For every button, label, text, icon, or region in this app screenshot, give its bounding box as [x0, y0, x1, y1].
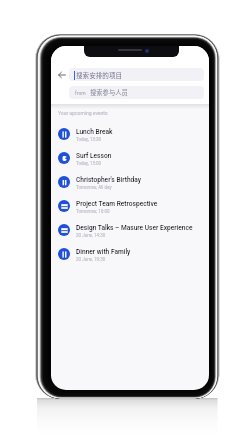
- staticText: Tomorrow, 10:00: [76, 209, 110, 214]
- button[interactable]: 搜索安排的项目: [69, 68, 204, 81]
- staticText: 20 June, 14:30: [76, 233, 106, 238]
- staticText: Today, 13:30: [76, 137, 102, 142]
- staticText: 20 June, 19:30: [76, 257, 106, 262]
- button[interactable]: Project Team Retrospective: [51, 194, 209, 218]
- staticText: Lunch Break: [76, 128, 113, 136]
- staticText: Dinner with Family: [76, 248, 131, 256]
- button[interactable]: Lunch Break: [51, 122, 209, 146]
- button[interactable]: from: [69, 86, 204, 99]
- staticText: Your upcoming events: [58, 110, 108, 116]
- staticText: Surf Lesson: [76, 152, 112, 160]
- button[interactable]: Design Talks – Masure User Experience: [51, 218, 209, 242]
- staticText: Today, 15:00: [76, 161, 102, 166]
- staticText: Project Team Retrospective: [76, 200, 158, 208]
- staticText: Christopher's Birthday: [76, 176, 142, 184]
- staticText: Tomorrow, All day: [76, 185, 112, 190]
- staticText: 搜索安排的项目: [76, 70, 123, 80]
- button[interactable]: Surf Lesson: [51, 146, 209, 170]
- button[interactable]: Back: [57, 70, 67, 80]
- button[interactable]: Dinner with Family: [51, 242, 209, 266]
- staticText: Design Talks – Masure User Experience: [76, 224, 193, 232]
- staticText: 搜索参与人员: [90, 88, 128, 97]
- staticText: from: [75, 90, 86, 96]
- button[interactable]: Christopher's Birthday: [51, 170, 209, 194]
